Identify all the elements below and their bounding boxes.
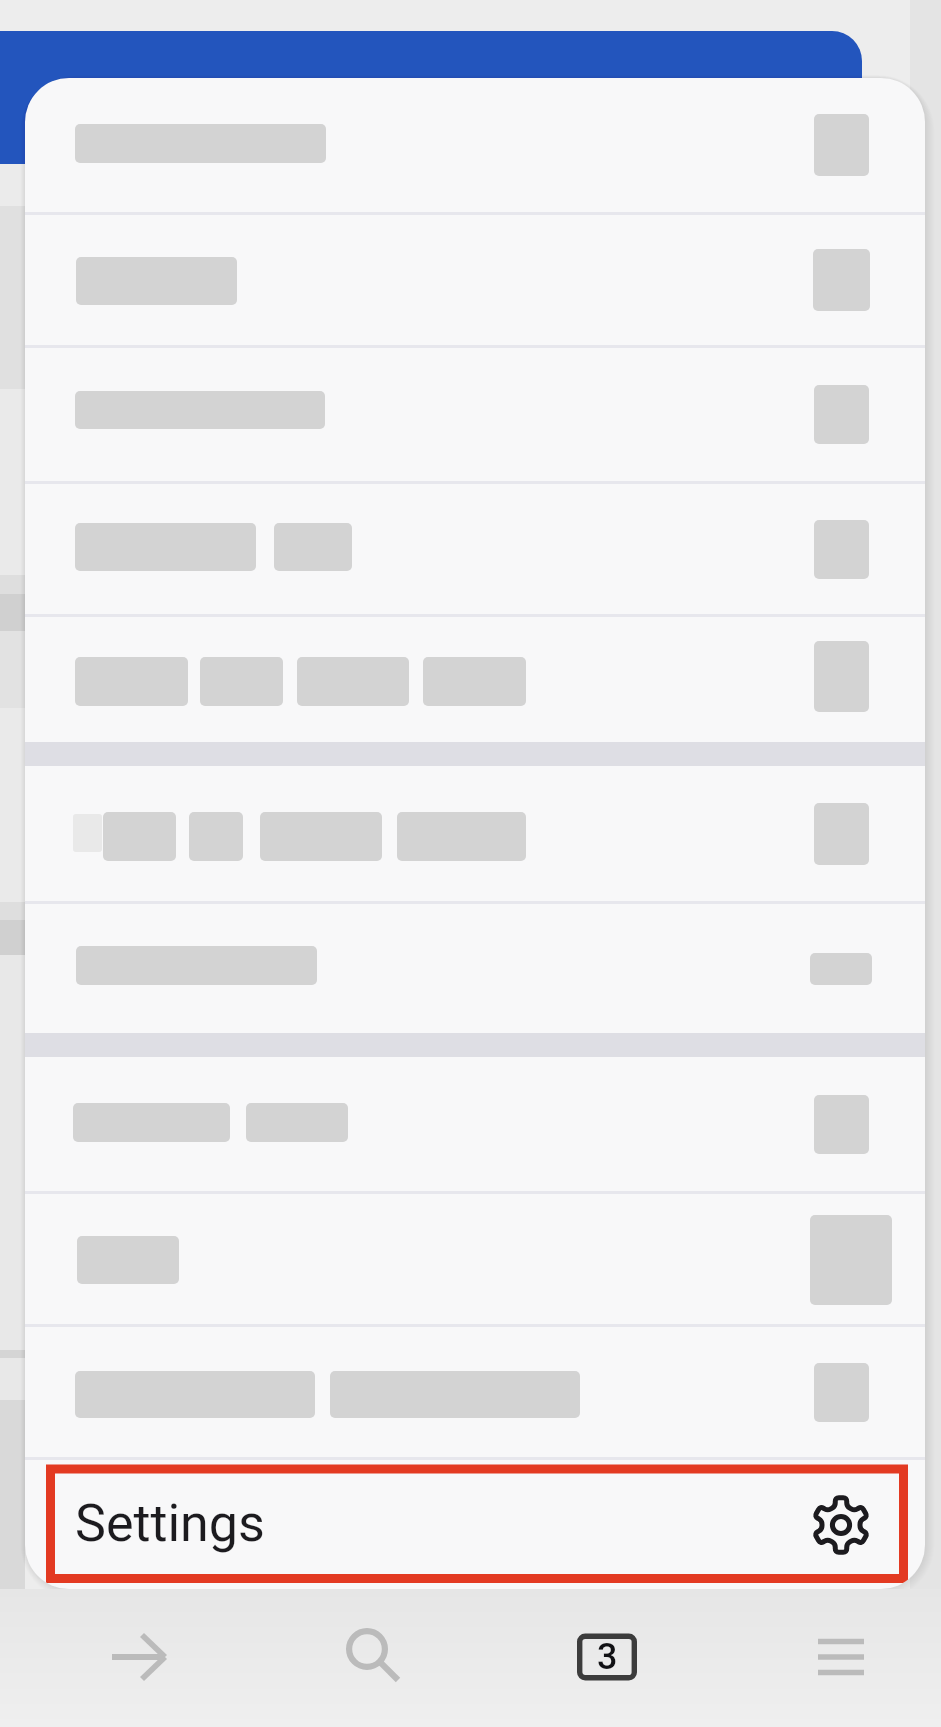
button[interactable]: Tabs <box>537 1589 677 1727</box>
button[interactable] <box>25 766 925 901</box>
button[interactable] <box>25 1194 925 1324</box>
button[interactable] <box>25 617 925 742</box>
button[interactable] <box>25 78 925 212</box>
button[interactable] <box>25 348 925 481</box>
button[interactable] <box>25 904 925 1033</box>
button[interactable] <box>25 484 925 614</box>
button[interactable]: Search <box>297 1589 437 1727</box>
button[interactable] <box>25 1327 925 1457</box>
button[interactable]: Settings <box>25 1460 925 1589</box>
staticText: Settings <box>75 1493 265 1554</box>
button[interactable]: Menu <box>771 1589 911 1727</box>
staticText: 3 <box>597 1636 618 1678</box>
button[interactable] <box>25 215 925 345</box>
button[interactable]: Forward <box>68 1589 208 1727</box>
button[interactable] <box>25 1057 925 1191</box>
